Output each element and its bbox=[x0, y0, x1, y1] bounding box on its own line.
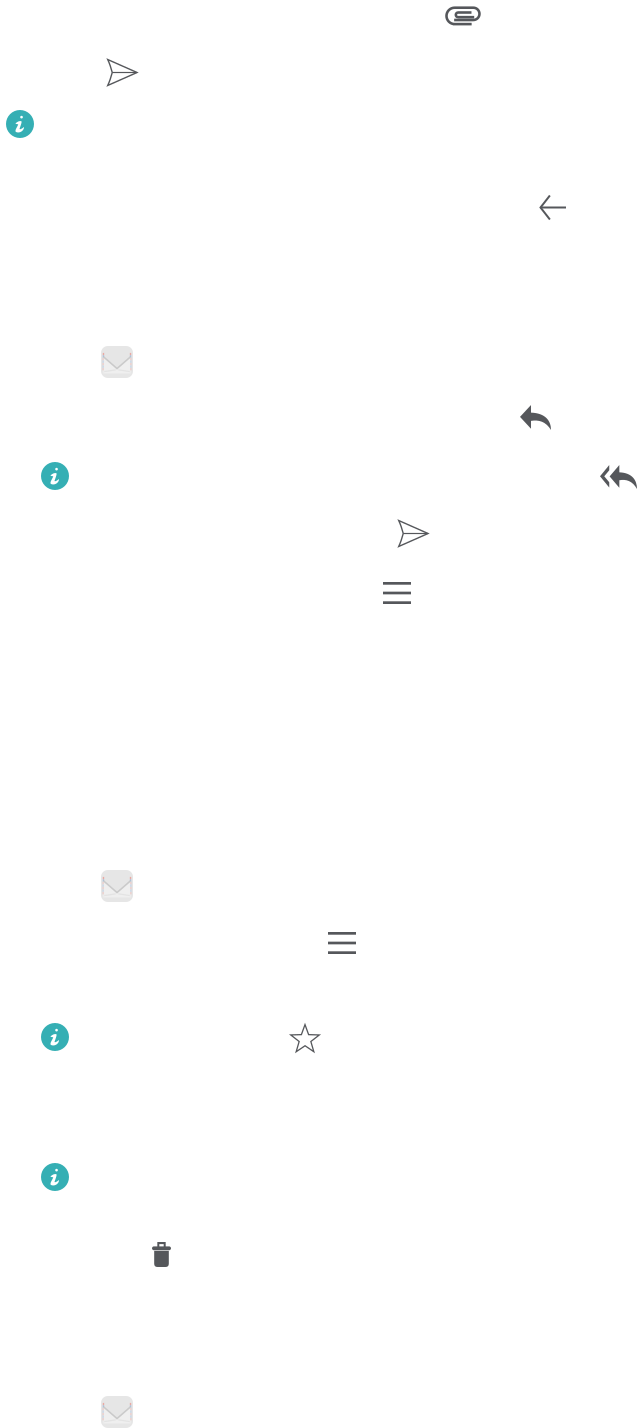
button[interactable]: Back bbox=[540, 195, 566, 220]
button[interactable]: Reply bbox=[520, 405, 551, 430]
button[interactable]: Info bbox=[6, 110, 34, 138]
button[interactable]: Menu bbox=[328, 932, 356, 954]
button[interactable]: Mail bbox=[101, 1396, 133, 1428]
button[interactable]: Reply all bbox=[600, 465, 637, 489]
button[interactable]: Info bbox=[41, 1163, 69, 1191]
button[interactable]: Favourite bbox=[290, 1024, 320, 1054]
button[interactable]: Menu bbox=[383, 582, 411, 604]
button[interactable]: Info bbox=[41, 1023, 69, 1051]
button[interactable]: Mail bbox=[101, 870, 133, 902]
button[interactable]: Send bbox=[398, 520, 428, 547]
button[interactable]: Delete bbox=[152, 1242, 171, 1267]
button[interactable]: Mail bbox=[101, 346, 133, 378]
button[interactable]: Send bbox=[107, 59, 137, 86]
button[interactable]: Attach bbox=[447, 6, 481, 26]
button[interactable]: Info bbox=[41, 462, 69, 490]
